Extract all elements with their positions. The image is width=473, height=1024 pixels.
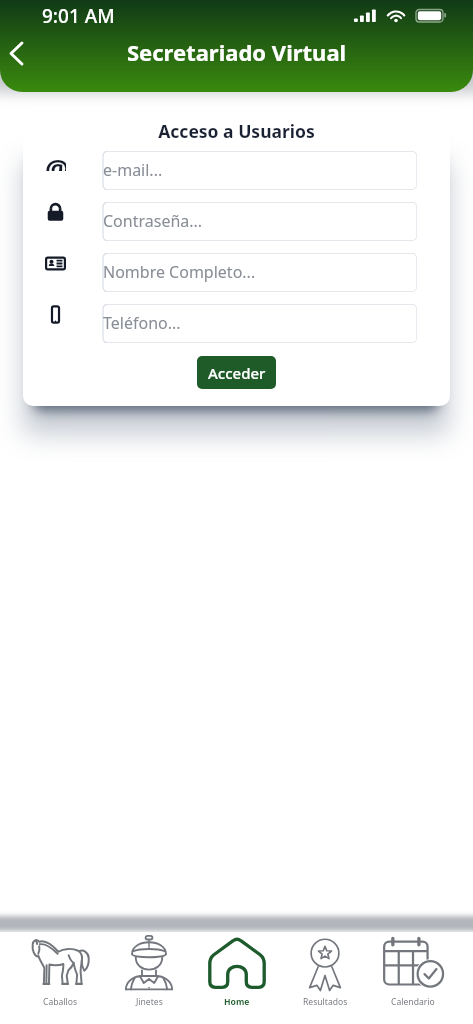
button[interactable]: Teléfono... [91, 304, 417, 343]
staticText: Acceso a Usuarios [56, 119, 417, 143]
button[interactable]: Contraseña... [91, 202, 417, 241]
button[interactable]: Back [0, 31, 36, 75]
staticText: Secretariado Virtual [127, 37, 347, 67]
button[interactable]: Nombre Completo... [91, 253, 417, 292]
staticText: e-mail... [103, 159, 163, 181]
staticText: Caballos [43, 996, 78, 1008]
button[interactable]: Home [193, 932, 281, 1024]
button[interactable]: Acceder [197, 356, 276, 389]
staticText: Jinetes [136, 996, 163, 1008]
button[interactable]: Jinetes [105, 932, 193, 1024]
staticText: Calendario [391, 996, 435, 1008]
staticText: Home [224, 996, 250, 1008]
button[interactable]: Resultados [281, 932, 369, 1024]
staticText: @ [45, 150, 66, 171]
staticText: Teléfono... [103, 312, 181, 334]
button[interactable]: Calendario [369, 932, 457, 1024]
button[interactable]: e-mail... [91, 151, 417, 190]
staticText: Nombre Completo... [103, 261, 256, 283]
staticText: Acceder [208, 363, 266, 383]
staticText: Contraseña... [103, 210, 203, 232]
button[interactable]: Caballos [16, 932, 105, 1024]
staticText: Resultados [303, 996, 348, 1008]
staticText: 9:01 AM [42, 3, 115, 29]
